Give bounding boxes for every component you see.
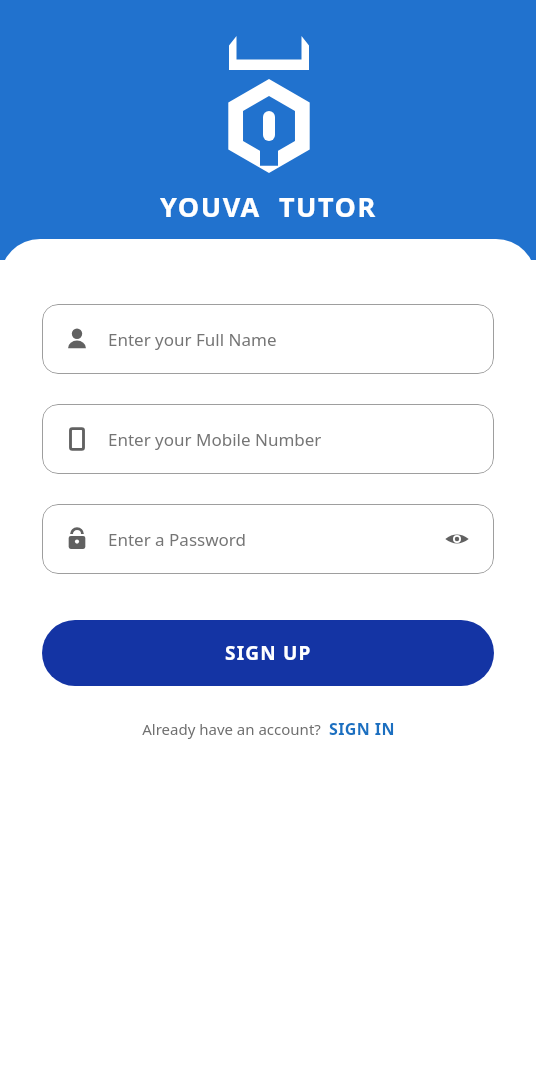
button[interactable]: Enter your Mobile Number	[42, 404, 494, 474]
button[interactable]: Show password	[442, 524, 472, 554]
staticText: SIGN UP	[225, 640, 312, 666]
button[interactable]: SIGN IN	[329, 718, 395, 740]
button[interactable]: Enter a Password	[42, 504, 494, 574]
button[interactable]: Enter your Full Name	[42, 304, 494, 374]
staticText: SIGN IN	[329, 718, 395, 740]
staticText: Enter a Password	[108, 528, 442, 551]
staticText: YOUVA	[160, 188, 261, 225]
staticText: Already have an account?	[142, 719, 321, 739]
staticText: Enter your Mobile Number	[108, 428, 472, 451]
button[interactable]: SIGN UP	[42, 620, 494, 686]
staticText: Enter your Full Name	[108, 328, 472, 351]
staticText: TUTOR	[279, 188, 377, 225]
